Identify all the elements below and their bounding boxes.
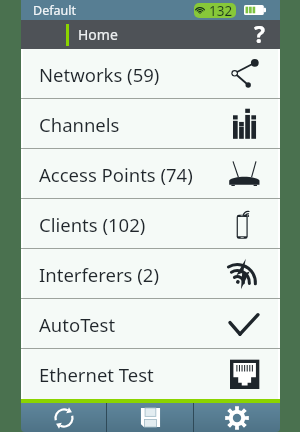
staticText: Access Points (74) [39,162,193,187]
staticText: ? [254,18,265,47]
button[interactable]: Help [236,20,280,49]
staticText: Ethernet Test [39,362,154,387]
staticText: Clients (102) [39,212,146,237]
staticText: AutoTest [39,312,116,337]
staticText: 132 [209,3,233,17]
staticText: Home [78,25,118,44]
button[interactable]: Clients (102) [23,199,278,249]
button[interactable]: Channels [23,99,278,149]
button[interactable]: Access Points (74) [23,149,278,199]
staticText: Default [33,2,76,19]
staticText: Networks (59) [39,62,160,87]
button[interactable]: Networks (59) [23,49,278,99]
staticText: Channels [39,112,120,137]
button[interactable]: AutoTest [23,299,278,349]
staticText: Interferers (2) [39,262,159,287]
button[interactable]: Settings [194,403,280,432]
button[interactable]: Save [107,403,193,432]
button[interactable]: Refresh [21,403,106,432]
button[interactable]: Ethernet Test [23,349,278,399]
button[interactable]: Interferers (2) [23,249,278,299]
